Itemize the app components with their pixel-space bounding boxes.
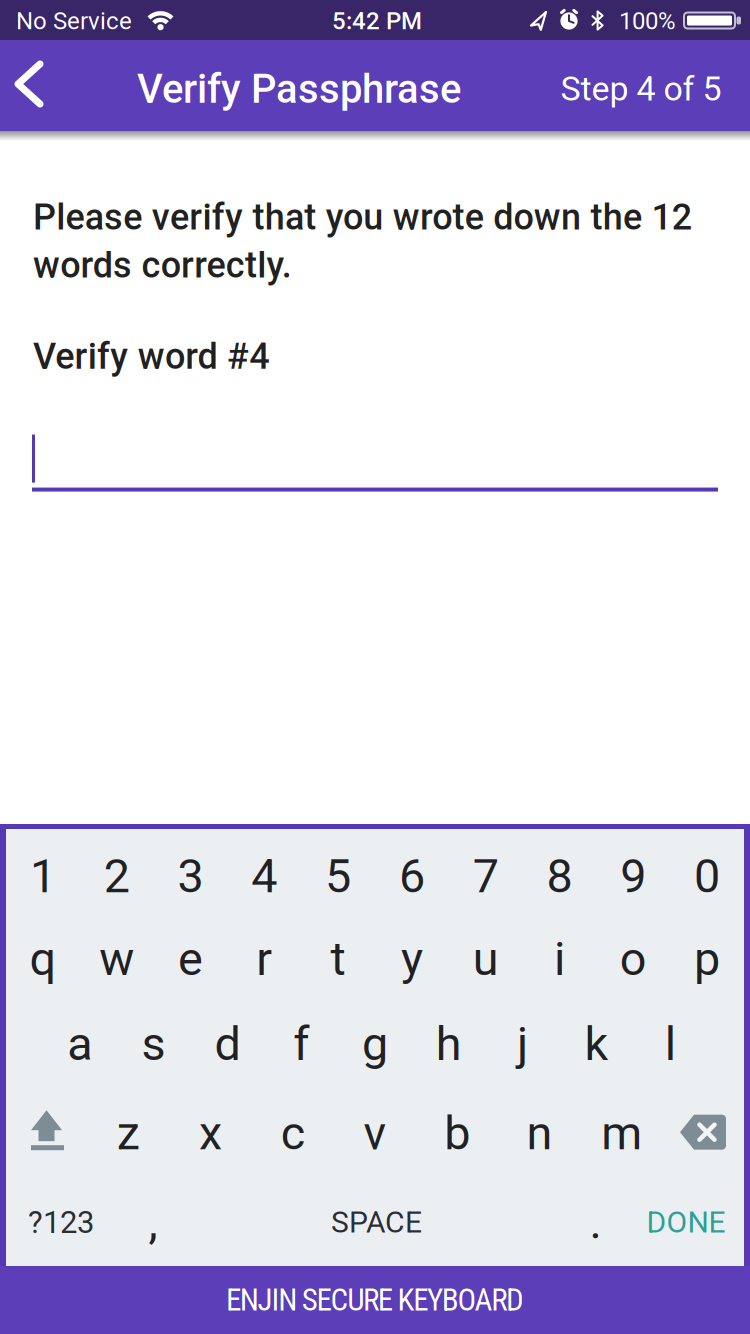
- button[interactable]: f: [264, 1004, 338, 1091]
- button[interactable]: v: [334, 1091, 416, 1179]
- staticText: a: [67, 1017, 92, 1071]
- button[interactable]: o: [596, 916, 670, 1004]
- staticText: q: [29, 932, 56, 986]
- button[interactable]: m: [581, 1091, 663, 1179]
- button[interactable]: ?123: [6, 1179, 116, 1266]
- button[interactable]: 7: [449, 829, 523, 916]
- staticText: g: [362, 1017, 388, 1071]
- staticText: p: [694, 932, 720, 986]
- staticText: k: [584, 1017, 608, 1071]
- staticText: ,: [148, 1195, 157, 1250]
- button[interactable]: x: [169, 1091, 252, 1179]
- button[interactable]: 8: [523, 829, 596, 916]
- button[interactable]: s: [117, 1004, 190, 1091]
- staticText: f: [293, 1017, 309, 1071]
- button[interactable]: g: [338, 1004, 412, 1091]
- staticText: 4: [251, 849, 277, 903]
- button[interactable]: w: [80, 916, 154, 1004]
- staticText: ?123: [28, 1204, 94, 1240]
- staticText: 5: [325, 849, 351, 903]
- staticText: Step 4 of 5: [560, 69, 721, 109]
- staticText: n: [527, 1106, 553, 1161]
- staticText: u: [473, 932, 499, 986]
- button[interactable]: 2: [80, 829, 154, 916]
- button[interactable]: c: [252, 1091, 334, 1179]
- staticText: r: [256, 932, 272, 986]
- staticText: h: [436, 1017, 462, 1071]
- staticText: Verify word #4: [33, 335, 269, 378]
- staticText: 2: [104, 849, 130, 903]
- staticText: z: [117, 1106, 140, 1161]
- staticText: 1: [30, 849, 56, 903]
- staticText: 3: [177, 849, 203, 903]
- button[interactable]: k: [559, 1004, 633, 1091]
- button[interactable]: q: [6, 916, 80, 1004]
- staticText: m: [601, 1106, 642, 1161]
- button[interactable]: u: [449, 916, 523, 1004]
- staticText: 9: [620, 849, 646, 903]
- staticText: y: [401, 932, 423, 986]
- button[interactable]: d: [190, 1004, 264, 1091]
- staticText: v: [363, 1106, 386, 1161]
- staticText: Verify Passphrase: [137, 66, 461, 112]
- button[interactable]: p: [670, 916, 744, 1004]
- button[interactable]: a: [43, 1004, 117, 1091]
- button[interactable]: b: [416, 1091, 498, 1179]
- button[interactable]: ,: [116, 1179, 190, 1266]
- button[interactable]: 3: [154, 829, 227, 916]
- button[interactable]: i: [523, 916, 596, 1004]
- button[interactable]: n: [498, 1091, 581, 1179]
- staticText: x: [199, 1106, 222, 1161]
- staticText: 5:42 PM: [332, 7, 422, 35]
- staticText: l: [665, 1017, 676, 1071]
- button[interactable]: Delete: [663, 1091, 744, 1179]
- button[interactable]: 0: [670, 829, 744, 916]
- button[interactable]: t: [301, 916, 375, 1004]
- staticText: j: [517, 1017, 528, 1071]
- button[interactable]: DONE: [628, 1179, 744, 1266]
- button[interactable]: z: [87, 1091, 169, 1179]
- button[interactable]: j: [486, 1004, 559, 1091]
- staticText: i: [554, 932, 565, 986]
- staticText: No Service: [16, 7, 132, 35]
- staticText: Please verify that you wrote down the 12…: [33, 196, 692, 286]
- button[interactable]: 4: [227, 829, 301, 916]
- staticText: c: [281, 1106, 305, 1161]
- staticText: DONE: [646, 1205, 725, 1240]
- button[interactable]: Shift: [6, 1091, 87, 1179]
- button[interactable]: SPACE: [190, 1179, 563, 1266]
- button[interactable]: 5: [301, 829, 375, 916]
- button[interactable]: 1: [6, 829, 80, 916]
- staticText: w: [99, 932, 134, 986]
- button[interactable]: h: [412, 1004, 486, 1091]
- button[interactable]: e: [154, 916, 227, 1004]
- staticText: 100%: [619, 7, 676, 35]
- staticText: SPACE: [331, 1205, 422, 1240]
- button[interactable]: r: [227, 916, 301, 1004]
- staticText: ENJIN SECURE KEYBOARD: [226, 1282, 524, 1318]
- button[interactable]: 9: [596, 829, 670, 916]
- staticText: d: [214, 1017, 240, 1071]
- staticText: s: [142, 1017, 166, 1071]
- staticText: e: [178, 932, 203, 986]
- staticText: .: [589, 1195, 601, 1250]
- button[interactable]: 6: [375, 829, 449, 916]
- button[interactable]: .: [563, 1179, 628, 1266]
- staticText: 6: [399, 849, 425, 903]
- staticText: o: [620, 932, 647, 986]
- staticText: 7: [473, 849, 499, 903]
- staticText: t: [331, 932, 346, 986]
- staticText: 0: [694, 849, 720, 903]
- staticText: 8: [546, 849, 572, 903]
- staticText: b: [444, 1106, 470, 1161]
- button[interactable]: l: [633, 1004, 707, 1091]
- button[interactable]: Back: [0, 40, 66, 131]
- button[interactable]: y: [375, 916, 449, 1004]
